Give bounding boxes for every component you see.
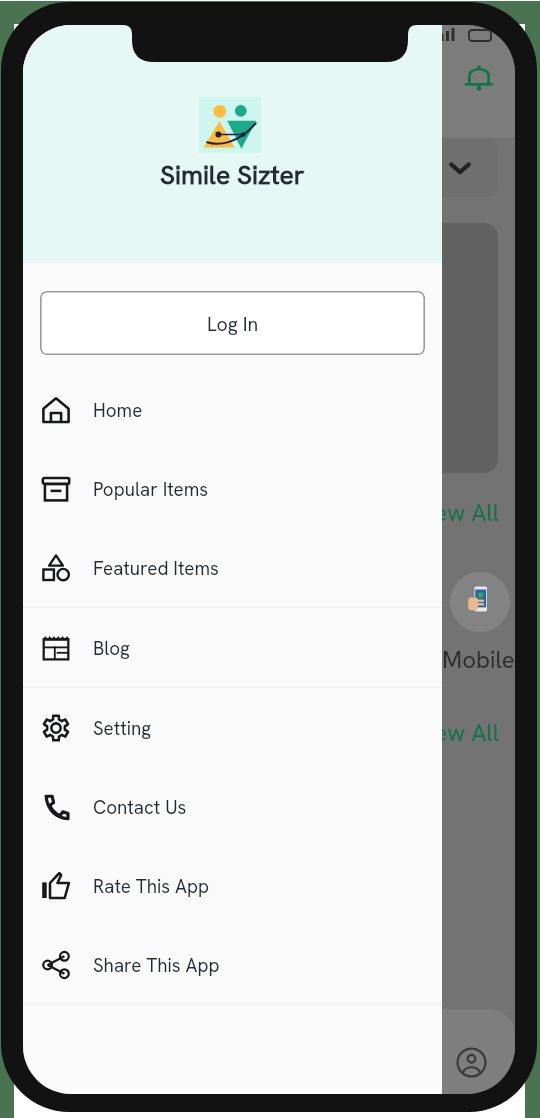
button[interactable]: Share This App xyxy=(23,925,442,1004)
button[interactable]: Blog xyxy=(23,608,442,687)
staticText: Blog xyxy=(93,636,130,660)
staticText: View All xyxy=(413,497,500,528)
staticText: Share This App xyxy=(93,953,220,977)
button[interactable]: Popular Items xyxy=(23,449,442,528)
button[interactable]: Home xyxy=(23,370,442,449)
button[interactable]: Featured Items xyxy=(23,528,442,607)
button[interactable]: Setting xyxy=(23,688,442,767)
staticText: Featured Items xyxy=(93,556,219,580)
button[interactable]: Log In xyxy=(40,291,425,355)
other: Notifications xyxy=(463,61,495,93)
staticText: Setting xyxy=(93,716,151,740)
button[interactable]: Contact Us xyxy=(23,767,442,846)
button[interactable]: Rate This App xyxy=(23,846,442,925)
staticText: View All xyxy=(413,717,500,748)
staticText: Contact Us xyxy=(93,795,187,819)
staticText: Mobiles xyxy=(442,644,515,675)
staticText: Simile Sizter xyxy=(160,157,305,192)
staticText: Log In xyxy=(207,311,259,336)
staticText: Rate This App xyxy=(93,874,210,898)
staticText: Popular Items xyxy=(93,477,209,501)
other: Account xyxy=(456,1047,487,1078)
staticText: Home xyxy=(93,398,143,422)
